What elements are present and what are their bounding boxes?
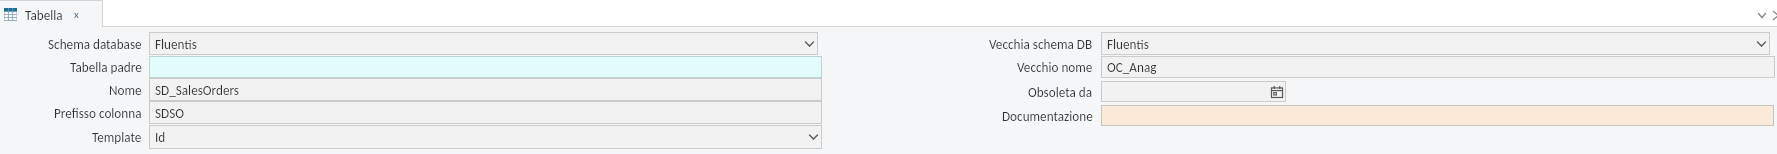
- staticText: OC_Anag: [1107, 59, 1157, 75]
- button[interactable]: Id: [149, 125, 822, 149]
- button[interactable]: Show tab list: [1753, 6, 1771, 24]
- staticText: Obsoleta da: [1028, 84, 1093, 100]
- button[interactable]: Next tab: [1767, 6, 1777, 24]
- button[interactable]: Pick date: [1268, 81, 1286, 102]
- button[interactable]: SDSO: [149, 101, 822, 124]
- staticText: Template: [92, 129, 142, 145]
- staticText: Schema database: [48, 36, 142, 52]
- button[interactable]: Open dropdown: [1753, 32, 1770, 55]
- button[interactable]: Fluentis: [149, 32, 818, 55]
- staticText: Vecchio nome: [1017, 59, 1093, 75]
- button[interactable]: Open dropdown: [805, 125, 822, 149]
- staticText: Tabella padre: [70, 59, 142, 75]
- button[interactable]: SD_SalesOrders: [149, 78, 822, 101]
- staticText: Tabella: [25, 7, 63, 23]
- button[interactable]: Tabella: [0, 0, 103, 27]
- staticText: Vecchia schema DB: [989, 36, 1093, 52]
- button[interactable]: OC_Anag: [1101, 56, 1775, 78]
- staticText: Prefisso colonna: [54, 105, 142, 121]
- button[interactable]: [149, 56, 822, 78]
- staticText: SD_SalesOrders: [155, 82, 240, 98]
- staticText: Nome: [109, 82, 142, 98]
- staticText: Fluentis: [155, 36, 197, 52]
- button[interactable]: Fluentis: [1101, 32, 1770, 55]
- staticText: x: [74, 8, 79, 21]
- button[interactable]: Open dropdown: [801, 32, 818, 55]
- staticText: Fluentis: [1107, 36, 1149, 52]
- button[interactable]: [1101, 105, 1774, 126]
- staticText: SDSO: [155, 105, 184, 121]
- staticText: Id: [155, 129, 166, 145]
- button[interactable]: Pick date: [1101, 81, 1286, 102]
- staticText: Documentazione: [1002, 108, 1093, 124]
